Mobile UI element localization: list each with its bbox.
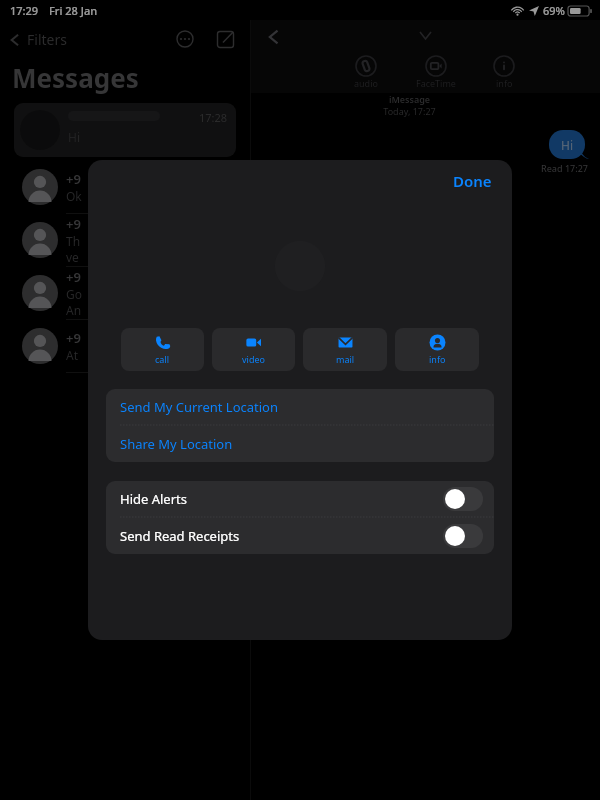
button[interactable]: Compose	[212, 26, 238, 52]
staticText: Hide Alerts	[120, 490, 187, 508]
button[interactable]: +9	[0, 214, 250, 266]
staticText: +9	[66, 268, 81, 286]
button[interactable]: call	[121, 328, 204, 371]
staticText: Th	[66, 233, 81, 249]
staticText: FaceTime	[416, 77, 456, 89]
staticText: info	[429, 353, 446, 365]
button[interactable]: +9	[0, 161, 250, 213]
staticText: An	[66, 302, 82, 318]
staticText: call	[155, 353, 170, 365]
staticText: Send Read Receipts	[120, 527, 240, 545]
button[interactable]: video	[212, 328, 295, 371]
staticText: Hi	[68, 129, 80, 145]
button[interactable]: +9	[0, 267, 250, 319]
staticText: Today, 17:27	[251, 105, 568, 117]
button[interactable]: Filters	[8, 30, 67, 49]
staticText: mail	[336, 353, 355, 365]
staticText: Send My Current Location	[120, 398, 279, 416]
button[interactable]: Back	[257, 20, 291, 54]
staticText: 17:28	[199, 110, 228, 125]
staticText: Read 17:27	[541, 162, 588, 174]
button[interactable]: info	[494, 56, 514, 89]
button[interactable]: Send My Current Location	[106, 389, 494, 425]
staticText: +9	[66, 170, 81, 188]
staticText: iMessage	[251, 93, 568, 105]
staticText: ve	[66, 249, 79, 265]
staticText: Hi	[561, 137, 573, 153]
button[interactable]: Hide Alerts	[106, 481, 494, 517]
staticText: Fri 28 Jan	[49, 3, 98, 18]
button[interactable]: +9	[0, 320, 250, 372]
staticText: +9	[66, 329, 81, 347]
staticText: info	[496, 77, 513, 89]
button[interactable]: Done	[445, 165, 500, 197]
staticText: video	[242, 353, 265, 365]
button[interactable]: More	[172, 26, 198, 52]
staticText: 17:29	[10, 3, 39, 18]
staticText: Messages	[12, 60, 139, 95]
staticText: 69%	[543, 3, 565, 18]
staticText: Go	[66, 286, 82, 302]
button[interactable]: info	[395, 328, 479, 371]
button[interactable]: mail	[303, 328, 387, 371]
staticText: Filters	[27, 30, 67, 49]
button[interactable]: Share My Location	[106, 426, 494, 462]
button[interactable]: Send Read Receipts	[106, 518, 494, 554]
staticText: Share My Location	[120, 435, 233, 453]
staticText: audio	[354, 77, 378, 89]
button[interactable]: FaceTime	[416, 56, 456, 89]
staticText: +9	[66, 215, 81, 233]
staticText: Ok	[66, 188, 82, 204]
staticText: At	[66, 347, 79, 363]
button[interactable]: audio	[354, 56, 378, 89]
button[interactable]: Hi	[14, 103, 236, 157]
staticText: Done	[453, 171, 492, 191]
